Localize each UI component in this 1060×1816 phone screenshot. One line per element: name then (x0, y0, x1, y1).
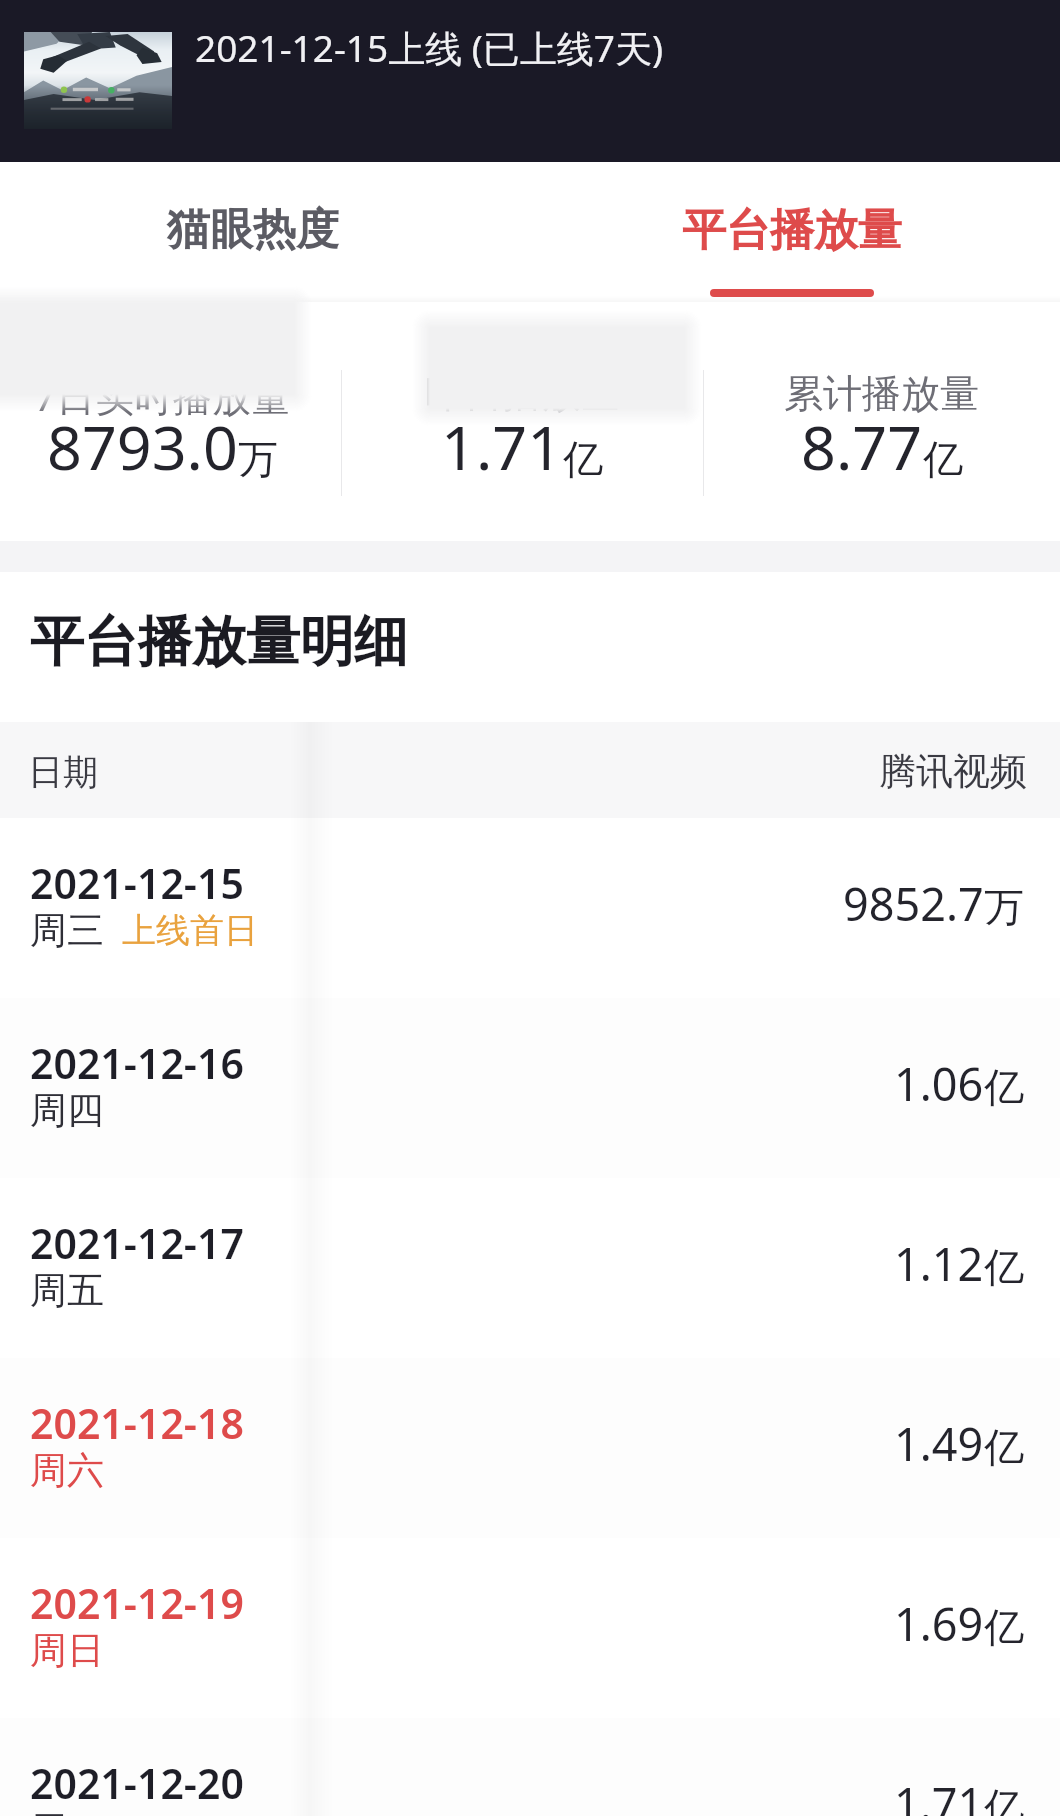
staticText: 2021-12-20 (30, 1755, 244, 1811)
button[interactable]: 猫眼热度 (0, 162, 530, 302)
staticText: 亿 (984, 1062, 1024, 1112)
button[interactable]: 2021-12-19 (0, 1538, 1060, 1718)
staticText: 2021-12-19 (30, 1575, 244, 1631)
staticText: 亿 (923, 434, 963, 484)
staticText: 平台播放量明细 (30, 608, 408, 676)
staticText: 日期 (28, 750, 98, 794)
button[interactable]: 2021-12-18 (0, 1358, 1060, 1538)
staticText: 2021-12-18 (30, 1395, 244, 1451)
button[interactable]: 2021-12-17 (0, 1178, 1060, 1358)
staticText: 周六 (30, 1447, 104, 1494)
staticText: 亿 (984, 1782, 1024, 1816)
staticText: 1.69 (894, 1593, 984, 1654)
button[interactable]: 2021-12-20 (0, 1718, 1060, 1816)
staticText: 亿 (984, 1602, 1024, 1652)
button[interactable]: 2021-12-15 (0, 818, 1060, 998)
staticText: 7日实时播放量 (34, 369, 291, 422)
staticText: 9852.7 (843, 873, 984, 934)
staticText: 周五 (30, 1267, 104, 1314)
staticText: 累计播放量 (784, 369, 979, 418)
button[interactable]: 2021-12-16 (0, 998, 1060, 1178)
staticText: 万 (984, 882, 1024, 932)
staticText: 猫眼热度 (167, 203, 339, 257)
staticText: 2021-12-17 (30, 1215, 244, 1271)
staticText: 平台播放量 (682, 203, 902, 258)
staticText: 1.49 (894, 1413, 984, 1474)
staticText: 亿 (563, 434, 603, 484)
staticText: 周日 (30, 1627, 104, 1674)
staticText: 万 (238, 434, 278, 484)
staticText: 1.12 (894, 1233, 984, 1294)
staticText: 上线首日 (122, 909, 258, 952)
button[interactable]: Movie poster (24, 32, 172, 129)
staticText: 1.06 (894, 1053, 984, 1114)
staticText: 8.77 (801, 405, 923, 488)
staticText: 周三 (30, 907, 104, 954)
staticText: 2021-12-15上线 (已上线7天) (195, 22, 664, 73)
staticText: 周一 (30, 1807, 104, 1816)
staticText: 2021-12-16 (30, 1035, 244, 1091)
staticText: 1.71 (441, 405, 563, 488)
button[interactable]: 平台播放量 (530, 162, 1060, 302)
staticText: 腾讯视频 (879, 748, 1027, 795)
staticText: 2021-12-15 (30, 855, 244, 911)
staticText: 周四 (30, 1087, 104, 1134)
staticText: 8793.0 (47, 405, 238, 488)
staticText: 亿 (984, 1242, 1024, 1292)
staticText: 亿 (984, 1422, 1024, 1472)
staticText: 1.71 (894, 1773, 984, 1816)
